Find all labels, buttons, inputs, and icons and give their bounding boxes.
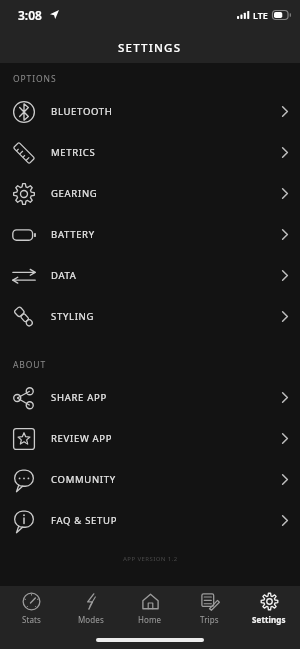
button[interactable]: SHARE APP bbox=[0, 377, 300, 418]
button[interactable]: REVIEW APP bbox=[0, 418, 300, 459]
button[interactable]: Modes bbox=[63, 591, 119, 625]
staticText: Settings bbox=[252, 614, 286, 625]
button[interactable]: Home bbox=[122, 591, 178, 625]
staticText: LTE bbox=[253, 9, 268, 21]
button[interactable]: DATA bbox=[0, 255, 300, 296]
staticText: 3:08 bbox=[18, 7, 42, 23]
staticText: ABOUT bbox=[13, 359, 47, 371]
button[interactable]: COMMUNITY bbox=[0, 459, 300, 500]
staticText: FAQ & SETUP bbox=[51, 514, 281, 527]
button[interactable]: BLUETOOTH bbox=[0, 91, 300, 132]
button[interactable]: GEARING bbox=[0, 173, 300, 214]
button[interactable]: FAQ & SETUP bbox=[0, 500, 300, 541]
staticText: DATA bbox=[51, 269, 281, 282]
staticText: OPTIONS bbox=[13, 73, 57, 85]
staticText: SETTINGS bbox=[118, 40, 182, 56]
button[interactable]: METRICS bbox=[0, 132, 300, 173]
staticText: REVIEW APP bbox=[51, 432, 281, 445]
button[interactable]: Settings bbox=[241, 591, 297, 625]
staticText: STYLING bbox=[51, 310, 281, 323]
button[interactable]: STYLING bbox=[0, 296, 300, 337]
staticText: BLUETOOTH bbox=[51, 105, 281, 118]
staticText: Stats bbox=[22, 614, 41, 625]
staticText: Home bbox=[138, 614, 162, 625]
staticText: Trips bbox=[200, 614, 219, 625]
staticText: COMMUNITY bbox=[51, 473, 281, 486]
staticText: SHARE APP bbox=[51, 391, 281, 404]
button[interactable]: BATTERY bbox=[0, 214, 300, 255]
staticText: APP VERSION 1.2 bbox=[123, 555, 178, 563]
button[interactable]: Trips bbox=[181, 591, 237, 625]
staticText: GEARING bbox=[51, 187, 281, 200]
staticText: Modes bbox=[78, 614, 104, 625]
staticText: BATTERY bbox=[51, 228, 281, 241]
staticText: METRICS bbox=[51, 146, 281, 159]
button[interactable]: Stats bbox=[3, 591, 59, 625]
